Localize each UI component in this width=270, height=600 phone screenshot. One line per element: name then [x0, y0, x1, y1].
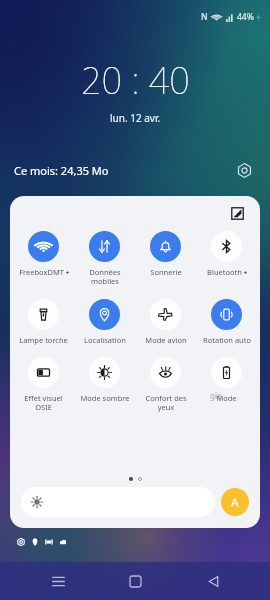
staticText: 44% [237, 11, 254, 23]
button[interactable]: Paramètres [232, 158, 256, 182]
staticText: Lampe torche [19, 335, 68, 345]
staticText: Sonnerie [150, 267, 182, 277]
staticText: Bluetooth [207, 267, 242, 277]
button[interactable]: Menu [38, 562, 78, 600]
staticText: N [201, 11, 208, 23]
button[interactable]: Retour [193, 562, 233, 600]
button[interactable]: Confort des yeux [135, 357, 196, 413]
staticText: lun. 12 avr. [110, 111, 161, 125]
button[interactable]: Modifier [226, 202, 248, 224]
button[interactable]: Rotation auto [196, 299, 257, 345]
staticText: Effet visuel OSIE [24, 393, 63, 413]
staticText: Rotation auto [203, 335, 251, 345]
button[interactable]: Luminosité [21, 487, 215, 517]
staticText: FreeboxDMT [19, 267, 64, 277]
button[interactable]: Mode avion [135, 299, 196, 345]
button[interactable]: FreeboxDMT [13, 231, 74, 277]
staticText: A [231, 494, 239, 510]
button[interactable]: Accueil [115, 562, 155, 600]
button[interactable]: Lampe torche [13, 299, 74, 345]
staticText: Mode sombre [80, 393, 130, 403]
staticText: Données mobiles [89, 267, 121, 287]
button[interactable]: A [221, 488, 249, 516]
button[interactable]: Localisation [74, 299, 135, 345]
staticText: Confort des yeux [145, 393, 187, 413]
staticText: Localisation [84, 335, 126, 345]
button[interactable]: Sonnerie [135, 231, 196, 277]
staticText: Mode avion [145, 335, 187, 345]
staticText: Mode [216, 393, 237, 403]
button[interactable]: Mode sombre [74, 357, 135, 403]
button[interactable]: Bluetooth [196, 231, 257, 277]
staticText: 20 : 40 [81, 56, 190, 105]
button[interactable]: Mode [196, 357, 257, 403]
button[interactable]: Effet visuel OSIE [13, 357, 74, 413]
staticText: gie [210, 390, 222, 401]
button[interactable]: Données mobiles [74, 231, 135, 287]
staticText: Ce mois: 24,35 Mo [14, 163, 109, 178]
